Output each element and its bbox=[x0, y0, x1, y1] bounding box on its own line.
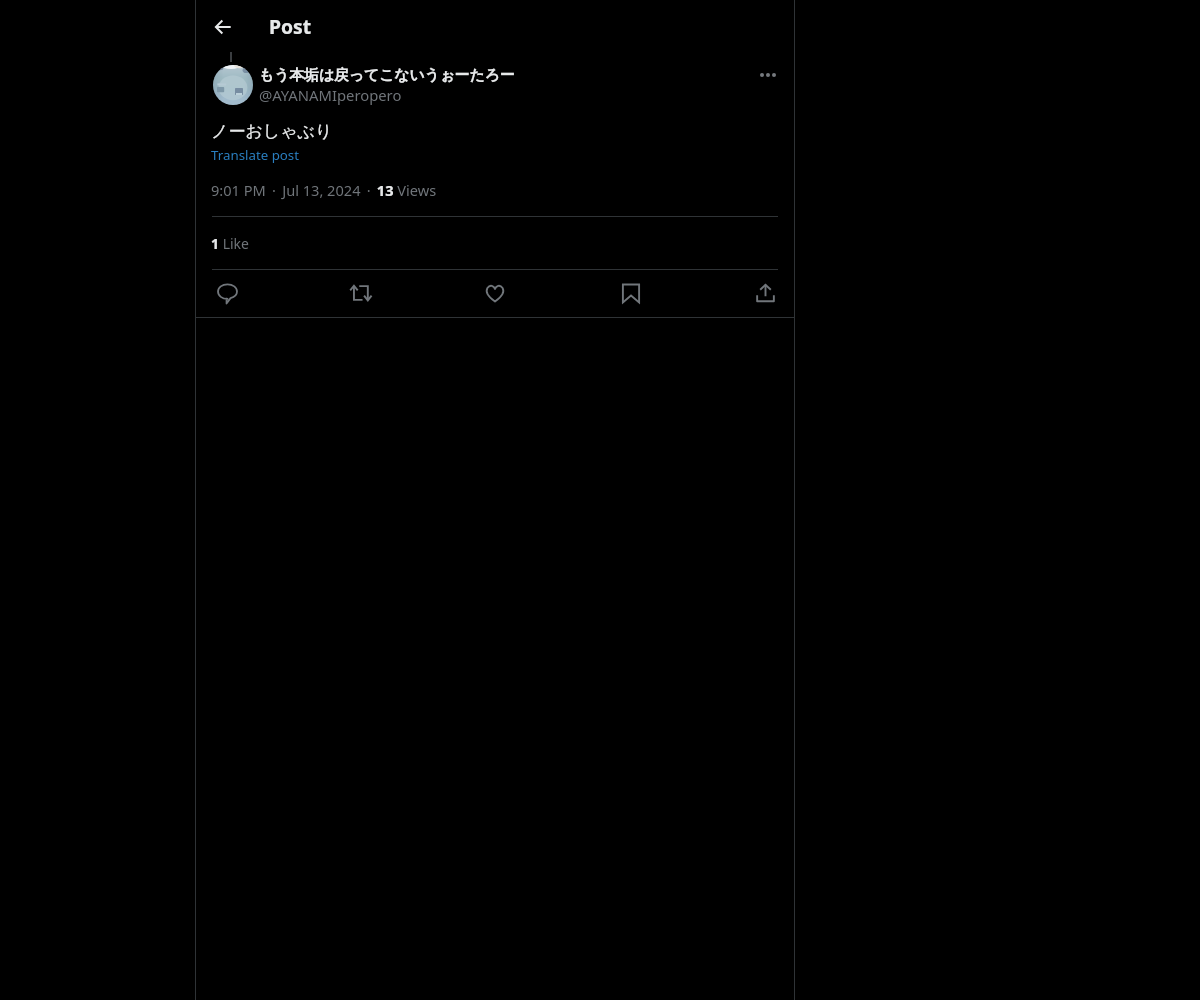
button[interactable]: Repost bbox=[344, 276, 378, 310]
button[interactable]: Bookmark bbox=[614, 276, 648, 310]
button[interactable]: Translate post bbox=[211, 146, 300, 164]
staticText: 1 Like bbox=[211, 234, 249, 253]
staticText: @AYANAMIperopero bbox=[259, 85, 402, 105]
staticText: もう本垢は戻ってこないうぉーたろー bbox=[259, 66, 515, 85]
button[interactable]: Like bbox=[478, 276, 512, 310]
button[interactable]: Back bbox=[199, 9, 235, 45]
button[interactable]: Profile photo bbox=[213, 65, 253, 105]
button[interactable]: More bbox=[751, 58, 785, 92]
button[interactable]: Reply bbox=[210, 276, 244, 310]
staticText: Translate post bbox=[211, 146, 300, 164]
button[interactable]: Share bbox=[748, 276, 782, 310]
button[interactable]: 1 Like bbox=[211, 234, 249, 253]
staticText: 9:01 PM · Jul 13, 2024 · 13 Views bbox=[211, 180, 437, 200]
staticText: Post bbox=[269, 13, 312, 39]
staticText: ノーおしゃぶり bbox=[211, 121, 333, 142]
